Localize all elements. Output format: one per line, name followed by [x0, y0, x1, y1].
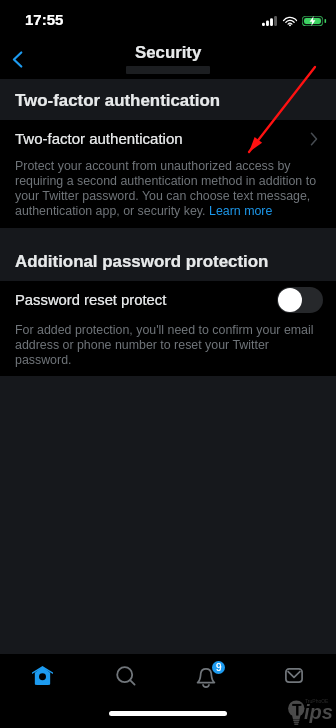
staticText: Two-factor authentication	[15, 91, 221, 110]
button[interactable]: Two-factor authentication	[0, 120, 336, 156]
staticText: Security	[135, 43, 202, 62]
staticText: Two-factor authentication	[15, 130, 183, 147]
staticText: TruPhoOE	[305, 698, 329, 704]
staticText: ips	[304, 701, 333, 723]
button[interactable]: Password reset protect	[0, 281, 336, 319]
button[interactable]: Back	[1, 43, 33, 75]
button[interactable]: Direct messages	[252, 654, 336, 696]
button[interactable]: Home	[0, 654, 84, 696]
button[interactable]: Password reset protect toggle	[277, 287, 323, 313]
staticText: Protect your account from unauthorized a…	[15, 159, 321, 217]
staticText: For added protection, you'll need to con…	[15, 323, 321, 366]
staticText: Password reset protect	[15, 292, 167, 309]
button[interactable]: Notifications	[168, 654, 252, 696]
button[interactable]: Search	[84, 654, 168, 696]
staticText: 9	[216, 662, 222, 673]
staticText: 17:55	[25, 11, 64, 28]
staticText: Additional password protection	[15, 252, 269, 271]
